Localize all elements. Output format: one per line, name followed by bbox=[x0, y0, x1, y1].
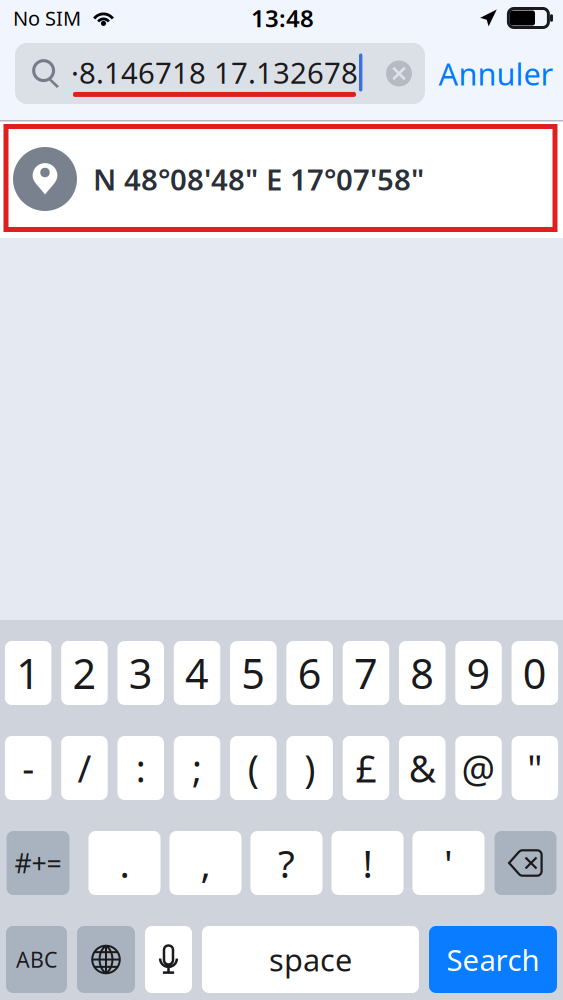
button[interactable]: , bbox=[169, 831, 241, 895]
button[interactable]: Clear text bbox=[380, 43, 418, 104]
staticText: , bbox=[200, 837, 210, 889]
staticText: : bbox=[136, 743, 146, 793]
staticText: / bbox=[77, 743, 91, 793]
staticText: 6 bbox=[298, 646, 322, 700]
staticText: ? bbox=[278, 837, 295, 889]
staticText: " bbox=[527, 743, 542, 793]
button[interactable]: Dictate bbox=[145, 926, 192, 993]
button[interactable]: 4 bbox=[174, 641, 220, 705]
staticText: No SIM bbox=[13, 5, 81, 31]
button[interactable]: 2 bbox=[61, 641, 108, 705]
button[interactable]: £ bbox=[343, 736, 389, 800]
button[interactable]: : bbox=[117, 736, 164, 800]
button[interactable]: ( bbox=[230, 736, 277, 800]
button[interactable]: 5 bbox=[230, 641, 277, 705]
button[interactable]: ? bbox=[250, 831, 322, 895]
staticText: 0 bbox=[523, 646, 547, 700]
staticText: ! bbox=[362, 837, 372, 889]
button[interactable]: space bbox=[202, 926, 419, 993]
staticText: ) bbox=[304, 743, 315, 793]
button[interactable]: ABC bbox=[6, 926, 67, 993]
button[interactable]: 9 bbox=[455, 641, 502, 705]
staticText: - bbox=[22, 743, 34, 793]
staticText: Search bbox=[446, 940, 539, 979]
button[interactable]: Annuler bbox=[433, 43, 559, 104]
staticText: 5 bbox=[241, 646, 265, 700]
button[interactable]: / bbox=[61, 736, 108, 800]
button[interactable]: Delete bbox=[494, 831, 556, 895]
staticText: . bbox=[119, 837, 129, 889]
button[interactable]: #+= bbox=[6, 831, 69, 895]
staticText: ABC bbox=[16, 945, 57, 974]
staticText: ; bbox=[192, 743, 202, 793]
button[interactable]: ) bbox=[286, 736, 333, 800]
button[interactable]: 0 bbox=[512, 641, 558, 705]
staticText: & bbox=[409, 743, 436, 793]
button[interactable]: 7 bbox=[343, 641, 389, 705]
button[interactable]: . bbox=[88, 831, 160, 895]
button[interactable]: 3 bbox=[117, 641, 164, 705]
staticText: Annuler bbox=[438, 53, 553, 94]
button[interactable]: ; bbox=[174, 736, 220, 800]
staticText: £ bbox=[355, 743, 376, 793]
staticText: 7 bbox=[354, 646, 378, 700]
staticText: space bbox=[269, 939, 352, 980]
button[interactable]: 8 bbox=[399, 641, 445, 705]
staticText: #+= bbox=[14, 845, 61, 881]
button[interactable]: Search bbox=[429, 926, 557, 993]
button[interactable]: 6 bbox=[286, 641, 333, 705]
staticText: 3 bbox=[129, 646, 153, 700]
staticText: ·8.146718 17.132678 bbox=[71, 53, 358, 92]
button[interactable]: @ bbox=[455, 736, 502, 800]
staticText: 13:48 bbox=[251, 2, 314, 34]
staticText: 1 bbox=[16, 646, 40, 700]
button[interactable]: N 48°08'48" E 17°07'58" bbox=[0, 120, 563, 238]
staticText: 8 bbox=[410, 646, 434, 700]
staticText: @ bbox=[462, 743, 496, 793]
button[interactable]: Next keyboard bbox=[77, 926, 135, 993]
button[interactable]: ! bbox=[331, 831, 403, 895]
button[interactable]: ' bbox=[412, 831, 484, 895]
staticText: 4 bbox=[185, 646, 209, 700]
button[interactable]: & bbox=[399, 736, 445, 800]
staticText: ( bbox=[248, 743, 259, 793]
button[interactable]: - bbox=[5, 736, 51, 800]
button[interactable]: " bbox=[512, 736, 558, 800]
staticText: N 48°08'48" E 17°07'58" bbox=[93, 159, 424, 198]
staticText: ' bbox=[444, 837, 453, 889]
staticText: 9 bbox=[467, 646, 491, 700]
staticText: 2 bbox=[72, 646, 96, 700]
button[interactable]: 1 bbox=[5, 641, 51, 705]
